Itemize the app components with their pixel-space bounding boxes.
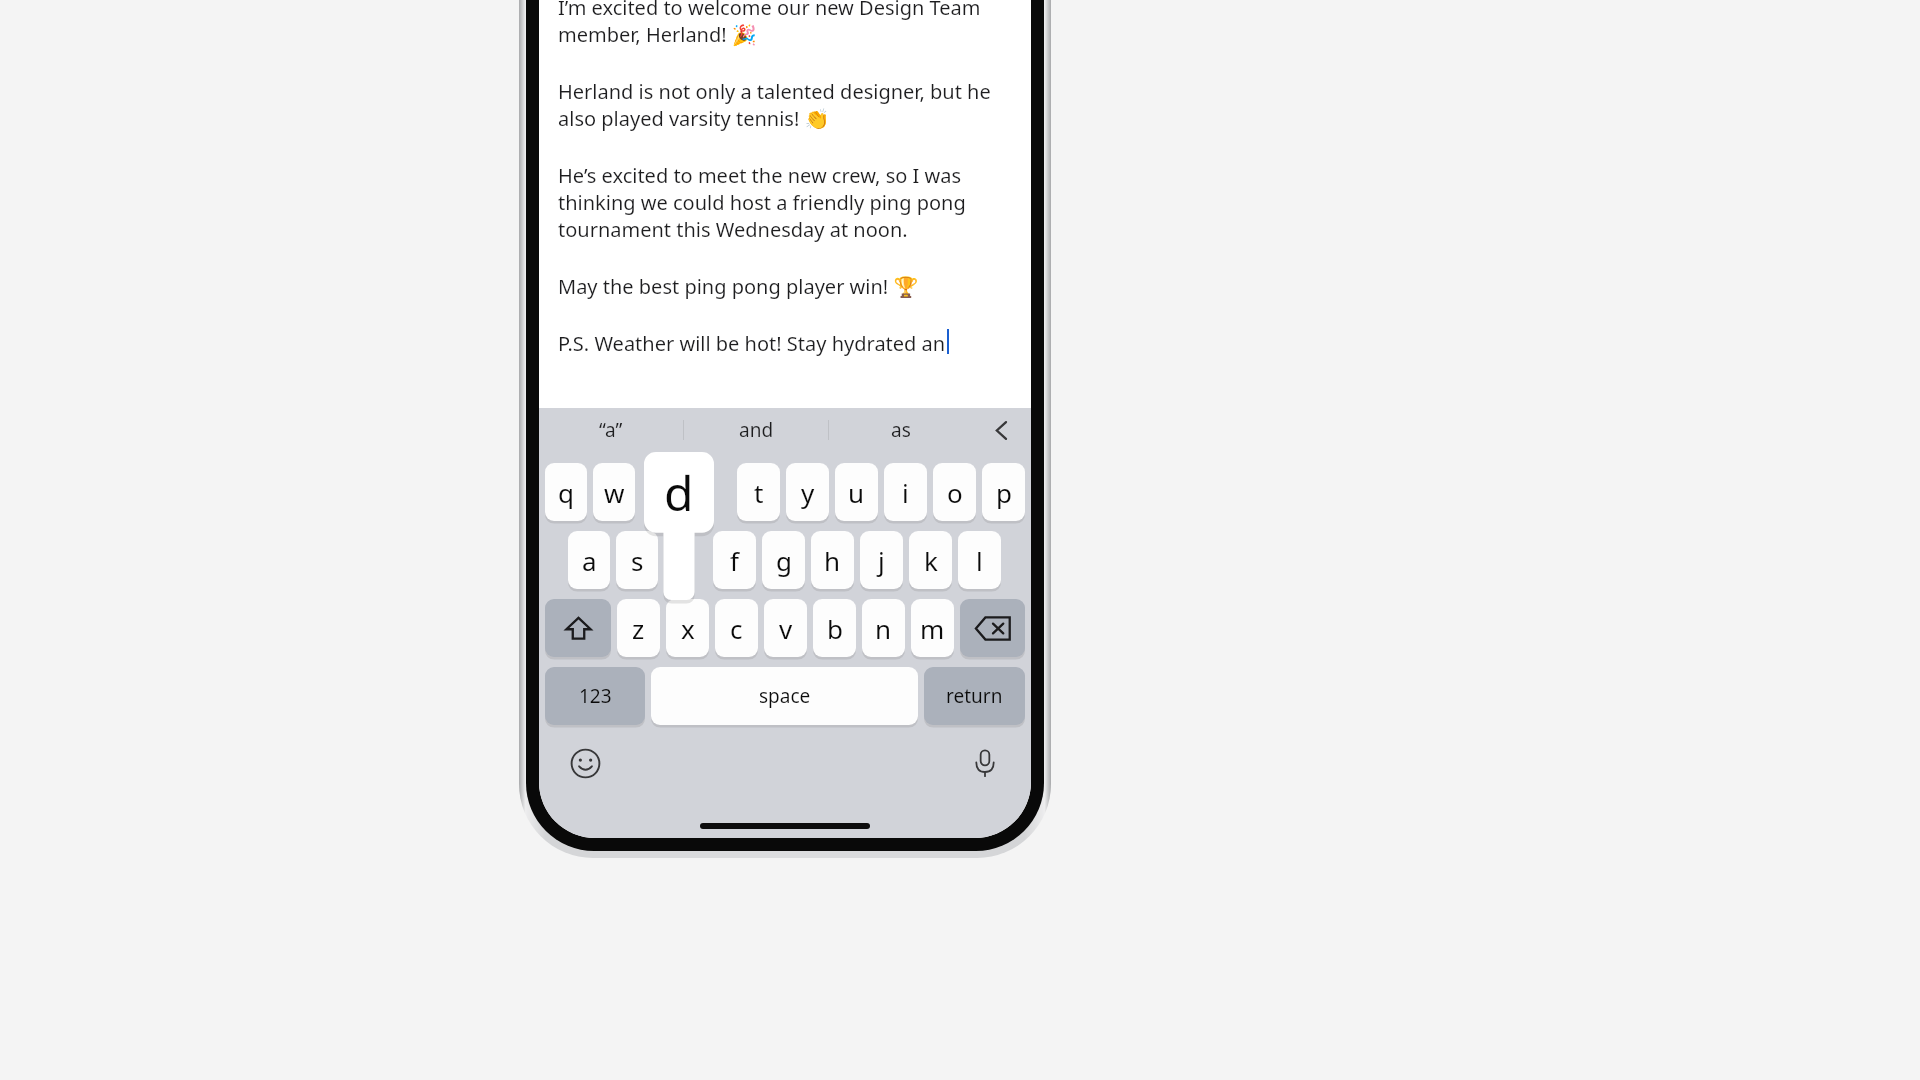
staticText: u xyxy=(848,475,865,510)
staticText: a xyxy=(582,543,597,578)
button[interactable]: Emoji keyboard xyxy=(563,741,607,785)
staticText: tournament this Wednesday at noon. xyxy=(558,216,908,243)
staticText: l xyxy=(976,543,983,578)
button[interactable]: Hide predictions xyxy=(973,408,1031,452)
button[interactable]: x xyxy=(666,599,709,657)
staticText: w xyxy=(604,475,625,510)
staticText: i xyxy=(902,475,909,510)
button[interactable]: b xyxy=(813,599,856,657)
button[interactable]: h xyxy=(811,531,854,589)
button[interactable]: s xyxy=(616,531,658,589)
button[interactable]: Dictation xyxy=(963,741,1007,785)
staticText: q xyxy=(558,475,574,510)
button[interactable]: j xyxy=(860,531,903,589)
staticText: thinking we could host a friendly ping p… xyxy=(558,189,966,216)
button[interactable]: t xyxy=(737,463,780,521)
button[interactable]: p xyxy=(982,463,1025,521)
staticText: n xyxy=(875,611,892,646)
button[interactable]: Delete xyxy=(960,599,1025,657)
staticText: P.S. Weather will be hot! Stay hydrated … xyxy=(558,330,946,357)
staticText: z xyxy=(632,611,645,646)
staticText: f xyxy=(730,543,739,578)
button[interactable]: k xyxy=(909,531,952,589)
button[interactable]: v xyxy=(764,599,807,657)
button[interactable]: o xyxy=(933,463,976,521)
button[interactable]: f xyxy=(713,531,756,589)
staticText: s xyxy=(631,543,644,578)
button[interactable]: a xyxy=(568,531,610,589)
staticText: j xyxy=(878,543,885,578)
button[interactable]: 123 xyxy=(545,667,645,725)
button[interactable]: u xyxy=(835,463,878,521)
staticText: d xyxy=(664,460,694,525)
staticText: He’s excited to meet the new crew, so I … xyxy=(558,162,962,189)
button[interactable]: l xyxy=(958,531,1001,589)
staticText: m xyxy=(920,611,945,646)
staticText: space xyxy=(759,683,811,709)
button[interactable]: g xyxy=(762,531,805,589)
staticText: v xyxy=(779,611,793,646)
button[interactable]: m xyxy=(911,599,954,657)
staticText: k xyxy=(924,543,938,578)
button[interactable]: y xyxy=(786,463,829,521)
staticText: h xyxy=(824,543,841,578)
button[interactable]: “a” xyxy=(539,408,683,452)
staticText: 123 xyxy=(579,683,612,709)
button[interactable]: d xyxy=(644,452,714,600)
staticText: x xyxy=(681,611,695,646)
button[interactable]: return xyxy=(924,667,1025,725)
staticText: return xyxy=(946,683,1003,709)
button[interactable]: i xyxy=(884,463,927,521)
staticText: also played varsity tennis! 👏 xyxy=(558,105,830,132)
staticText: member, Herland! 🎉 xyxy=(558,21,757,48)
staticText: b xyxy=(827,611,843,646)
button[interactable]: q xyxy=(545,463,587,521)
button[interactable]: n xyxy=(862,599,905,657)
button[interactable]: Shift xyxy=(545,599,611,657)
staticText: and xyxy=(739,417,774,443)
button[interactable]: c xyxy=(715,599,758,657)
staticText: y xyxy=(801,475,815,510)
staticText: Herland is not only a talented designer,… xyxy=(558,78,991,105)
button[interactable]: z xyxy=(617,599,660,657)
button[interactable]: w xyxy=(593,463,635,521)
button[interactable]: as xyxy=(829,408,973,452)
button[interactable]: space xyxy=(651,667,918,725)
staticText: o xyxy=(947,475,963,510)
staticText: p xyxy=(996,475,1012,510)
button[interactable]: and xyxy=(684,408,828,452)
staticText: “a” xyxy=(599,417,623,443)
staticText: I’m excited to welcome our new Design Te… xyxy=(558,0,981,21)
staticText: t xyxy=(754,475,764,510)
button[interactable]: I’m excited to welcome our new Design Te… xyxy=(539,0,1031,408)
staticText: c xyxy=(730,611,743,646)
staticText: May the best ping pong player win! 🏆 xyxy=(558,273,919,300)
staticText: g xyxy=(776,543,792,578)
staticText: as xyxy=(891,417,911,443)
